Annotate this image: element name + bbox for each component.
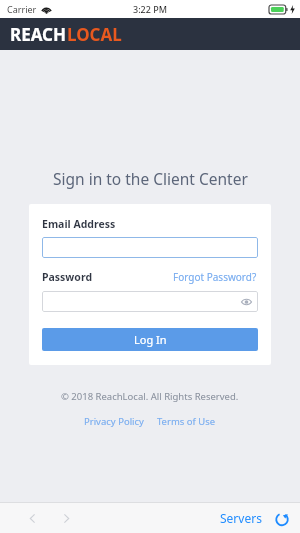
staticText: Carrier [7,3,37,15]
staticText: Terms of Use [157,415,216,428]
staticText: 3:22 PM [133,3,167,15]
staticText: Forgot Password? [173,270,257,284]
staticText: Log In [134,332,167,347]
button[interactable]: Forward [56,508,76,528]
staticText: Privacy Policy [84,415,144,428]
button[interactable]: Servers [218,507,264,529]
staticText: Sign in to the Client Center [53,168,248,189]
button[interactable]: Log In [42,328,258,351]
button[interactable]: Privacy Policy [82,413,146,430]
button[interactable]: Password field [42,291,258,312]
button[interactable]: REACH [10,23,122,46]
button[interactable]: Terms of Use [155,413,218,430]
staticText: © 2018 ReachLocal. All Rights Reserved. [61,390,239,403]
staticText: REACH [10,23,67,46]
button[interactable]: Back [22,508,42,528]
button[interactable]: Email Address field [42,237,258,258]
button[interactable]: Forgot Password? [172,269,258,285]
staticText: Servers [220,510,262,526]
button[interactable]: Show password [240,295,253,308]
button[interactable]: Refresh [272,509,291,528]
staticText: Email Address [42,217,116,231]
staticText: LOCAL [67,23,122,46]
staticText: Password [42,270,93,284]
